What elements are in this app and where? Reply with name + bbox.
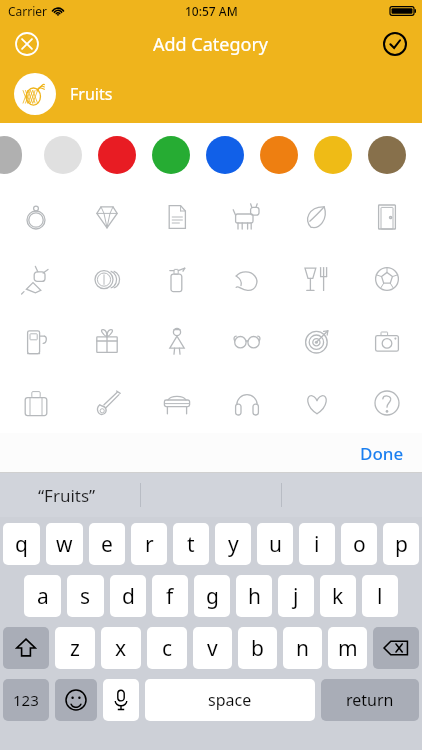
button[interactable]: [360, 132, 414, 178]
button[interactable]: Icon 11: [352, 248, 422, 310]
button[interactable]: Icon 1: [71, 186, 142, 248]
staticText: 10:57 AM: [185, 3, 238, 19]
button[interactable]: Emoji: [55, 679, 97, 721]
button[interactable]: w: [46, 523, 83, 565]
button[interactable]: Icon 5: [352, 186, 422, 248]
button[interactable]: k: [320, 575, 356, 617]
button[interactable]: Icon 14: [142, 310, 212, 372]
button[interactable]: j: [278, 575, 314, 617]
button[interactable]: d: [110, 575, 146, 617]
button[interactable]: Icon 15: [212, 310, 282, 372]
button[interactable]: Dictate: [103, 679, 139, 721]
staticText: u: [269, 530, 282, 559]
staticText: z: [70, 634, 80, 663]
button[interactable]: n: [283, 627, 322, 669]
button[interactable]: space: [145, 679, 315, 721]
staticText: q: [15, 530, 28, 559]
button[interactable]: [306, 132, 360, 178]
button[interactable]: [198, 132, 252, 178]
button[interactable]: [144, 132, 198, 178]
button[interactable]: Icon 19: [71, 372, 142, 433]
staticText: o: [353, 530, 366, 559]
staticText: t: [187, 530, 195, 559]
staticText: Done: [360, 442, 404, 465]
staticText: h: [248, 582, 261, 611]
button[interactable]: Shift: [3, 627, 49, 669]
staticText: Fruits: [70, 83, 113, 105]
staticText: k: [332, 582, 344, 611]
button[interactable]: v: [193, 627, 232, 669]
staticText: x: [115, 634, 127, 663]
button[interactable]: [0, 132, 36, 178]
button[interactable]: i: [299, 523, 335, 565]
button[interactable]: f: [152, 575, 188, 617]
button[interactable]: Done: [356, 438, 408, 469]
button[interactable]: 123: [3, 679, 49, 721]
button[interactable]: Icon 10: [282, 248, 352, 310]
button[interactable]: Icon 17: [352, 310, 422, 372]
button[interactable]: Icon 12: [0, 310, 71, 372]
button[interactable]: [252, 132, 306, 178]
button[interactable]: Backspace: [373, 627, 419, 669]
staticText: g: [206, 582, 219, 611]
button[interactable]: Icon 23: [352, 372, 422, 433]
button[interactable]: Icon 13: [71, 310, 142, 372]
button[interactable]: Fruits: [0, 66, 422, 122]
button[interactable]: c: [147, 627, 187, 669]
staticText: 123: [13, 690, 39, 710]
staticText: s: [80, 582, 91, 611]
staticText: space: [208, 689, 252, 711]
button[interactable]: Confirm: [378, 27, 412, 61]
button[interactable]: return: [321, 679, 419, 721]
button[interactable]: e: [89, 523, 125, 565]
button[interactable]: u: [257, 523, 293, 565]
button[interactable]: Icon 6: [0, 248, 71, 310]
button[interactable]: Icon 22: [282, 372, 352, 433]
button[interactable]: o: [341, 523, 377, 565]
staticText: b: [251, 634, 264, 663]
staticText: n: [296, 634, 309, 663]
button[interactable]: Icon 2: [142, 186, 212, 248]
button[interactable]: [90, 132, 144, 178]
staticText: return: [346, 689, 394, 711]
button[interactable]: a: [24, 575, 61, 617]
staticText: w: [56, 530, 73, 559]
button[interactable]: [36, 132, 90, 178]
staticText: Carrier: [8, 3, 48, 19]
staticText: i: [314, 530, 320, 559]
button[interactable]: p: [383, 523, 419, 565]
staticText: d: [122, 582, 135, 611]
button[interactable]: Icon 20: [142, 372, 212, 433]
staticText: p: [395, 530, 408, 559]
staticText: c: [162, 634, 173, 663]
button[interactable]: y: [215, 523, 251, 565]
button[interactable]: Icon 21: [212, 372, 282, 433]
staticText: e: [101, 530, 113, 559]
staticText: “Fruits”: [38, 484, 96, 507]
button[interactable]: s: [67, 575, 104, 617]
button[interactable]: x: [101, 627, 141, 669]
button[interactable]: l: [362, 575, 398, 617]
button[interactable]: h: [236, 575, 272, 617]
button[interactable]: q: [3, 523, 40, 565]
button[interactable]: Icon 18: [0, 372, 71, 433]
staticText: l: [377, 582, 383, 611]
button[interactable]: Icon 4: [282, 186, 352, 248]
staticText: j: [293, 582, 299, 611]
button[interactable]: t: [173, 523, 209, 565]
button[interactable]: Icon 3: [212, 186, 282, 248]
staticText: m: [338, 634, 358, 663]
button[interactable]: g: [194, 575, 230, 617]
button[interactable]: m: [328, 627, 367, 669]
button[interactable]: Icon 8: [142, 248, 212, 310]
button[interactable]: z: [55, 627, 95, 669]
button[interactable]: Icon 0: [0, 186, 71, 248]
button[interactable]: Icon 7: [71, 248, 142, 310]
button[interactable]: Cancel: [10, 27, 44, 61]
staticText: f: [166, 582, 174, 611]
button[interactable]: Icon 16: [282, 310, 352, 372]
button[interactable]: r: [131, 523, 167, 565]
button[interactable]: b: [238, 627, 277, 669]
staticText: a: [37, 582, 49, 611]
button[interactable]: Icon 9: [212, 248, 282, 310]
